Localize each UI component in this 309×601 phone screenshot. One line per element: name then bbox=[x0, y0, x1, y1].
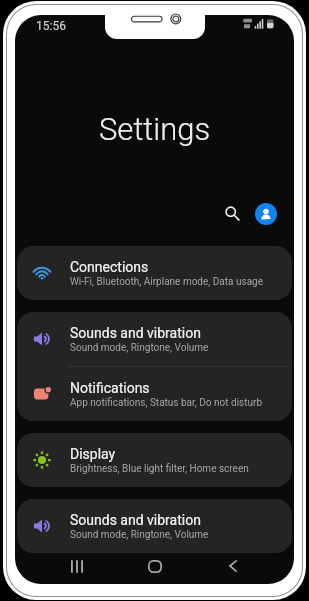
button[interactable]: Search bbox=[220, 201, 246, 227]
button[interactable]: Back bbox=[203, 550, 263, 582]
staticText: App notifications, Status bar, Do not di… bbox=[70, 397, 263, 409]
button[interactable]: Recent apps bbox=[47, 550, 107, 582]
button[interactable]: Sounds and vibration bbox=[17, 312, 292, 366]
button[interactable]: Display bbox=[17, 433, 292, 487]
staticText: Display bbox=[70, 446, 116, 462]
button[interactable]: Account bbox=[255, 203, 277, 225]
staticText: Connections bbox=[70, 259, 149, 275]
button[interactable]: Connections bbox=[17, 246, 292, 300]
staticText: Sounds and vibration bbox=[70, 325, 201, 341]
staticText: Brightness, Blue light filter, Home scre… bbox=[70, 463, 249, 475]
button[interactable]: Sounds and vibration bbox=[17, 499, 292, 553]
staticText: Notifications bbox=[70, 380, 150, 396]
button[interactable]: Notifications bbox=[17, 367, 292, 421]
staticText: Settings bbox=[99, 111, 211, 147]
staticText: Sound mode, Ringtone, Volume bbox=[70, 529, 209, 541]
button[interactable]: Home bbox=[125, 550, 185, 582]
staticText: Sounds and vibration bbox=[70, 512, 201, 528]
staticText: Wi-Fi, Bluetooth, Airplane mode, Data us… bbox=[70, 276, 263, 288]
staticText: 15:56 bbox=[36, 19, 66, 33]
staticText: Sound mode, Ringtone, Volume bbox=[70, 342, 209, 354]
